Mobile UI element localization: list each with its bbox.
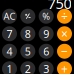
button[interactable]: 7 — [2, 26, 17, 41]
button[interactable]: 9 — [39, 26, 54, 41]
staticText: ÷ — [61, 8, 68, 24]
staticText: 7 — [6, 27, 12, 41]
staticText: 5 — [25, 44, 31, 58]
button[interactable]: Divide — [57, 9, 72, 24]
staticText: 8 — [25, 27, 31, 41]
staticText: 1 — [6, 62, 12, 74]
staticText: 3 — [43, 62, 49, 74]
staticText: 9 — [43, 27, 49, 41]
staticText: AC — [3, 10, 15, 22]
button[interactable]: 8 — [20, 26, 35, 41]
button[interactable]: 4 — [2, 44, 17, 59]
staticText: + — [61, 61, 68, 74]
staticText: − — [61, 43, 68, 59]
button[interactable]: 5 — [20, 44, 35, 59]
staticText: 6 — [43, 44, 49, 58]
staticText: 4 — [6, 44, 12, 58]
staticText: % — [42, 10, 50, 22]
staticText: × — [61, 26, 68, 42]
button[interactable]: Add — [57, 61, 72, 74]
button[interactable]: All clear — [2, 9, 17, 24]
button[interactable]: 6 — [39, 44, 54, 59]
staticText: 2 — [25, 62, 31, 74]
button[interactable]: 1 — [2, 61, 17, 74]
button[interactable]: Percent — [39, 9, 54, 24]
button[interactable]: Plus minus — [20, 9, 35, 24]
button[interactable]: 2 — [20, 61, 35, 74]
button[interactable]: Subtract — [57, 44, 72, 59]
button[interactable]: Multiply — [57, 26, 72, 41]
button[interactable]: 3 — [39, 61, 54, 74]
staticText: 750 — [47, 0, 71, 13]
